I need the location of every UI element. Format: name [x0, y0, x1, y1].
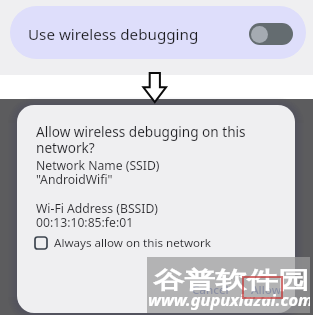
staticText: www.gupuxiazai.com — [148, 288, 310, 310]
staticText: Always allow on this network — [54, 235, 211, 251]
staticText: 谷普软件园 — [153, 266, 309, 295]
staticText: Network Name (SSID) "AndroidWifi" — [36, 157, 160, 187]
button[interactable]: Use wireless debugging — [10, 6, 306, 59]
staticText: Use wireless debugging — [28, 24, 199, 45]
staticText: Wi-Fi Address (BSSID) 00:13:10:85:fe:01 — [36, 200, 158, 230]
button[interactable]: Wireless debugging toggle — [249, 23, 293, 45]
button[interactable]: Allow — [243, 277, 290, 303]
staticText: Allow — [251, 282, 282, 298]
staticText: Allow wireless debugging on this network… — [36, 122, 246, 157]
button[interactable]: Cancel — [184, 277, 237, 303]
staticText: Cancel — [192, 282, 229, 298]
button[interactable]: Always allow on this network — [32, 233, 213, 253]
